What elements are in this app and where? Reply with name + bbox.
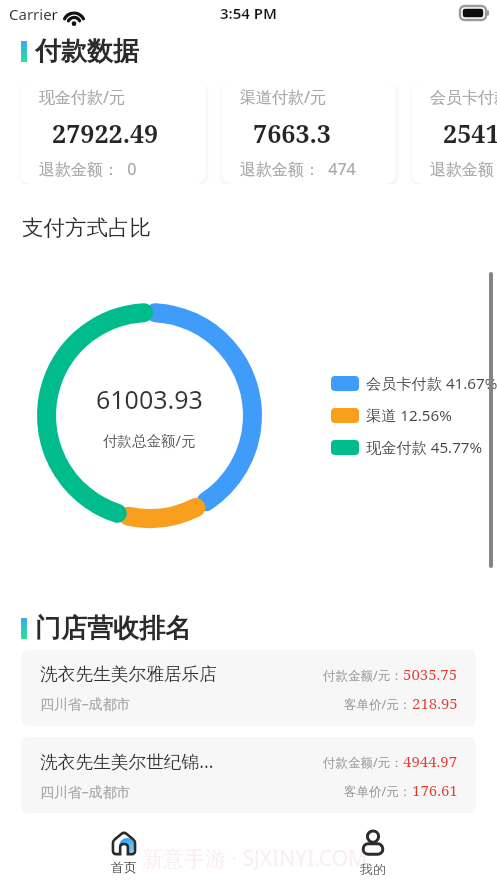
button[interactable]: 洗衣先生美尔世纪锦... (21, 737, 476, 813)
staticText: 176.61 (412, 780, 458, 800)
staticText: 会员卡付款/元 (430, 86, 497, 108)
staticText: 洗衣先生美尔世纪锦... (40, 749, 214, 773)
staticText: 退款金额： 474 (240, 158, 356, 180)
staticText: 渠道付款/元 (240, 86, 326, 108)
staticText: 门店营收排名 (35, 612, 191, 645)
staticText: 现金付款 45.77% (366, 437, 483, 458)
staticText: 2541.24 (443, 116, 497, 150)
staticText: 客单价/元： (344, 696, 412, 713)
staticText: 27922.49 (52, 116, 159, 150)
staticText: 付款金额/元： (323, 754, 403, 771)
staticText: 会员卡付款 41.67% (366, 373, 497, 394)
button[interactable]: 渠道付款/元 (222, 82, 396, 184)
staticText: 7663.3 (253, 116, 331, 150)
staticText: 我的 (360, 861, 386, 877)
staticText: 现金付款/元 (39, 86, 125, 108)
button[interactable]: 会员卡付款/元 (412, 82, 497, 184)
staticText: 首页 (111, 859, 137, 875)
staticText: 3:54 PM (220, 3, 277, 23)
staticText: 四川省–成都市 (40, 694, 131, 713)
button[interactable]: 现金付款/元 (21, 82, 206, 184)
staticText: 四川省–成都市 (40, 782, 131, 801)
staticText: 退款金额： 0 (39, 158, 137, 180)
staticText: 4944.97 (403, 751, 458, 771)
staticText: 支付方式占比 (22, 214, 151, 241)
staticText: 渠道 12.56% (366, 405, 452, 426)
button[interactable]: 我的 (345, 825, 401, 881)
staticText: 付款金额/元： (323, 667, 403, 684)
button[interactable]: 洗衣先生美尔雅居乐店 (21, 650, 476, 726)
staticText: Carrier (9, 4, 58, 24)
staticText: 客单价/元： (344, 783, 412, 800)
staticText: 61003.93 (96, 382, 203, 416)
staticText: 付款数据 (35, 35, 139, 68)
staticText: 退款金额： 0 (430, 158, 497, 180)
staticText: 付款总金额/元 (103, 430, 196, 450)
staticText: 218.95 (412, 693, 458, 713)
staticText: 新意手游 · SJXINYI.COM (142, 844, 368, 873)
button[interactable]: 首页 (97, 828, 151, 879)
staticText: 洗衣先生美尔雅居乐店 (40, 663, 217, 685)
staticText: 5035.75 (403, 664, 458, 684)
